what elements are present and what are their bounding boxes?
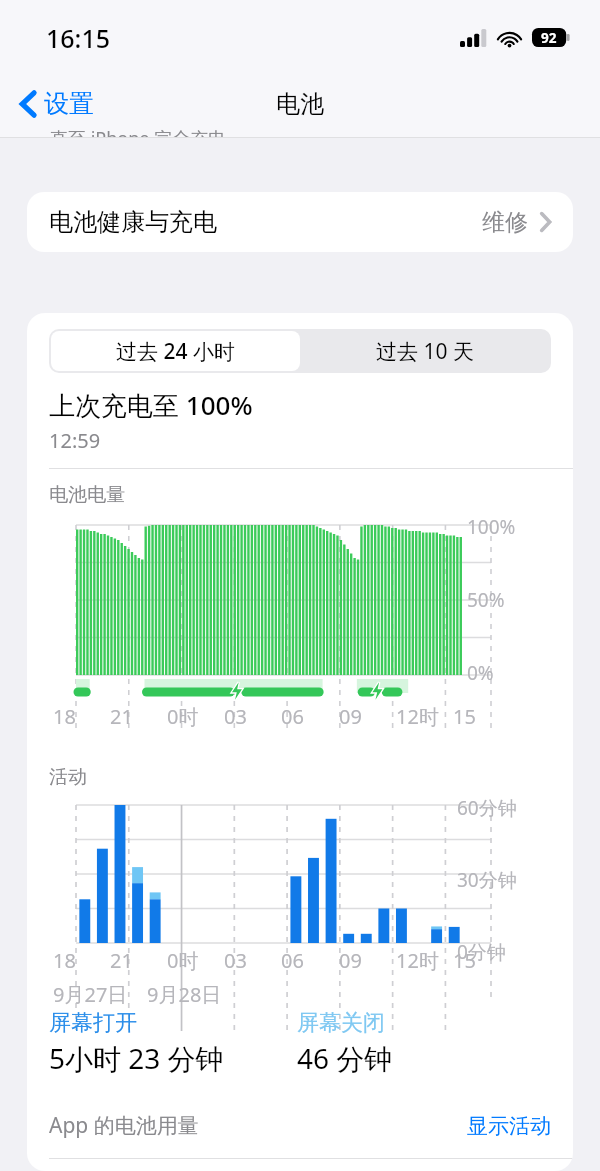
staticText: 设置	[44, 88, 94, 119]
staticText: 显示活动	[467, 1113, 551, 1139]
staticText: 上次充电至 100%	[49, 387, 253, 423]
staticText: 电池健康与充电	[49, 207, 217, 237]
staticText: 06	[281, 703, 304, 730]
staticText: 5小时 23 分钟	[49, 1039, 224, 1077]
staticText: 30分钟	[457, 867, 517, 893]
staticText: 过去 10 天	[376, 337, 474, 366]
staticText: 03	[224, 947, 247, 974]
staticText: 15	[453, 947, 476, 974]
staticText: 100%	[467, 514, 516, 540]
staticText: 活动	[49, 765, 87, 789]
staticText: 屏幕关闭	[297, 1009, 385, 1037]
staticText: 18	[53, 703, 76, 730]
staticText: 电池	[276, 89, 324, 119]
button[interactable]: 显示活动	[467, 1113, 551, 1139]
staticText: 12时	[396, 947, 439, 974]
button[interactable]: 过去 24 小时	[51, 331, 300, 371]
staticText: 16:15	[46, 21, 111, 55]
staticText: 21	[110, 947, 133, 974]
staticText: 18	[53, 947, 76, 974]
button[interactable]: 电池健康与充电	[27, 192, 573, 252]
staticText: 0时	[167, 703, 199, 730]
staticText: 12:59	[49, 427, 101, 454]
staticText: 电池电量	[49, 483, 125, 507]
staticText: 03	[224, 703, 247, 730]
staticText: 9月27日	[53, 981, 128, 1008]
staticText: 0%	[467, 660, 494, 686]
staticText: 0时	[167, 947, 199, 974]
staticText: 92	[541, 29, 557, 47]
staticText: 12时	[396, 703, 439, 730]
staticText: 维修	[482, 208, 528, 237]
staticText: 60分钟	[457, 795, 517, 821]
staticText: 过去 24 小时	[116, 337, 235, 366]
staticText: 09	[339, 947, 362, 974]
button[interactable]: 设置	[14, 82, 100, 125]
staticText: 09	[339, 703, 362, 730]
staticText: 50%	[467, 587, 505, 613]
staticText: 屏幕打开	[49, 1009, 137, 1037]
staticText: 0分钟	[457, 939, 506, 965]
staticText: 9月28日	[147, 981, 222, 1008]
staticText: 21	[110, 703, 133, 730]
staticText: 15	[453, 703, 476, 730]
staticText: 06	[281, 947, 304, 974]
staticText: 直至 iPhone 完全充电。	[50, 126, 245, 151]
staticText: 46 分钟	[297, 1039, 393, 1077]
staticText: App 的电池用量	[49, 1111, 199, 1140]
button[interactable]: 过去 10 天	[300, 331, 549, 371]
